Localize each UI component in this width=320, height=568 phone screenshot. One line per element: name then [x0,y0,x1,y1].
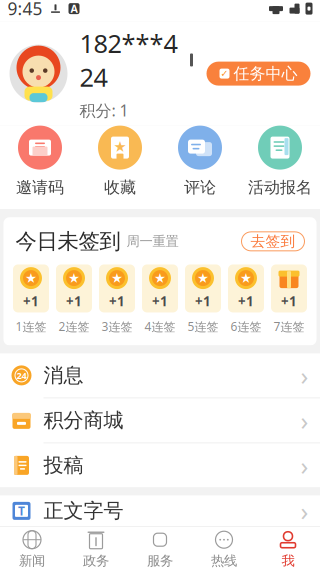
staticText: 积分商城 [43,408,123,433]
staticText: 活动报名 [248,178,312,197]
button[interactable]: 24 [0,353,320,397]
staticText: 邀请码 [16,178,64,197]
button[interactable]: 政务 [64,526,128,568]
staticText: 投稿 [43,453,83,478]
button[interactable]: 评论 [160,126,240,197]
staticText: ★ [154,270,166,286]
button[interactable]: 活动报名 [240,126,320,197]
staticText: 5连签 [187,318,218,334]
staticText: T [18,503,25,519]
button[interactable]: 服务 [128,526,192,568]
staticText: +1 [23,292,39,310]
staticText: 正文字号 [43,499,123,523]
button[interactable]: 投稿 [0,443,320,487]
staticText: 24 [16,369,26,382]
staticText: 7连签 [273,318,304,334]
button[interactable]: ★ [95,264,138,334]
staticText: ✓ [220,68,228,79]
staticText: ★ [25,270,37,286]
staticText: ★ [240,270,252,286]
staticText: +1 [152,292,168,310]
staticText: ★ [197,270,209,286]
button[interactable]: 积分商城 [0,398,320,442]
staticText: 1连签 [15,318,46,334]
staticText: 我 [281,553,294,568]
button[interactable]: 新闻 [0,526,64,568]
staticText: +1 [66,292,82,310]
button[interactable]: ★ [80,126,160,197]
button[interactable]: 去签到 [241,232,304,251]
button[interactable]: 我 [256,526,320,568]
staticText: 积分: 1 [79,100,128,121]
staticText: › [300,494,308,528]
staticText: 今日未签到 [15,228,120,254]
staticText: 任务中心 [233,64,297,83]
staticText: 热线 [211,553,237,568]
button[interactable]: T [0,489,320,533]
staticText: 收藏 [104,178,136,197]
staticText: 消息 [43,363,83,388]
button[interactable]: Profile photo [9,45,67,103]
staticText: ★ [111,270,123,286]
button[interactable]: +1 [267,264,310,334]
staticText: ★ [113,138,126,155]
staticText: +1 [238,292,254,310]
staticText: › [300,449,308,482]
staticText: 新闻 [19,553,45,568]
button[interactable]: ★ [138,264,181,334]
button[interactable]: ★ [52,264,95,334]
staticText: A [70,1,77,16]
button[interactable]: 邀请码 [0,126,80,197]
button[interactable]: ★ [181,264,224,334]
button[interactable]: ✓ [206,62,310,86]
staticText: 4连签 [144,318,175,334]
staticText: 评论 [184,178,216,197]
staticText: +1 [109,292,125,310]
staticText: ★ [68,270,80,286]
staticText: +1 [195,292,211,310]
staticText: › [300,359,308,392]
staticText: 182***424 [79,26,177,94]
button[interactable]: 热线 [192,526,256,568]
staticText: 3连签 [101,318,132,334]
staticText: 周一重置 [126,233,178,250]
staticText: 9:45 [7,0,42,20]
staticText: 政务 [83,553,109,568]
staticText: 服务 [147,553,173,568]
staticText: › [300,404,308,437]
button[interactable]: ★ [9,264,52,334]
button[interactable]: ★ [224,264,267,334]
staticText: 2连签 [58,318,89,334]
staticText: +1 [281,292,297,310]
button[interactable]: Edit nickname [183,52,199,68]
staticText: 去签到 [250,232,295,250]
staticText: 6连签 [230,318,261,334]
